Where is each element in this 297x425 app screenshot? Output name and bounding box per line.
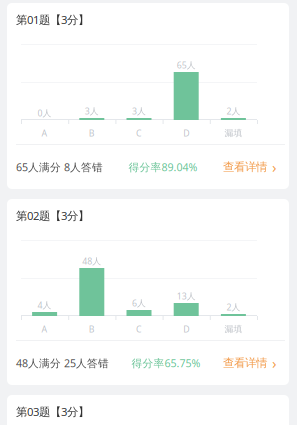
staticText: 2人 (226, 301, 240, 313)
staticText: 4人 (38, 299, 52, 311)
staticText: 得分率65.75% (131, 356, 200, 370)
staticText: C (136, 323, 142, 335)
staticText: B (89, 127, 95, 139)
staticText: 2人 (226, 105, 240, 117)
staticText: 漏填 (224, 323, 242, 335)
staticText: 3人 (85, 105, 99, 117)
button[interactable]: 查看详情 (223, 157, 277, 177)
staticText: › (272, 157, 277, 177)
staticText: 查看详情 (223, 356, 267, 370)
staticText: 48人满分 25人答错 (16, 356, 109, 370)
staticText: 第01题【3分】 (16, 12, 89, 27)
staticText: D (183, 323, 189, 335)
staticText: › (272, 353, 277, 373)
staticText: A (42, 127, 48, 139)
staticText: 6人 (132, 297, 146, 309)
staticText: A (42, 323, 48, 335)
staticText: D (183, 127, 189, 139)
staticText: 0人 (38, 107, 52, 119)
staticText: 第02题【3分】 (16, 208, 89, 223)
staticText: 第03题【3分】 (16, 404, 89, 419)
staticText: 漏填 (224, 127, 242, 139)
staticText: 3人 (132, 105, 146, 117)
staticText: 13人 (177, 290, 196, 302)
staticText: 得分率89.04% (128, 160, 197, 174)
staticText: 65人 (177, 59, 196, 71)
staticText: B (89, 323, 95, 335)
button[interactable]: 查看详情 (223, 353, 277, 373)
staticText: 48人 (82, 255, 101, 267)
staticText: 65人满分 8人答错 (16, 160, 103, 174)
staticText: C (136, 127, 142, 139)
staticText: 查看详情 (223, 160, 267, 174)
